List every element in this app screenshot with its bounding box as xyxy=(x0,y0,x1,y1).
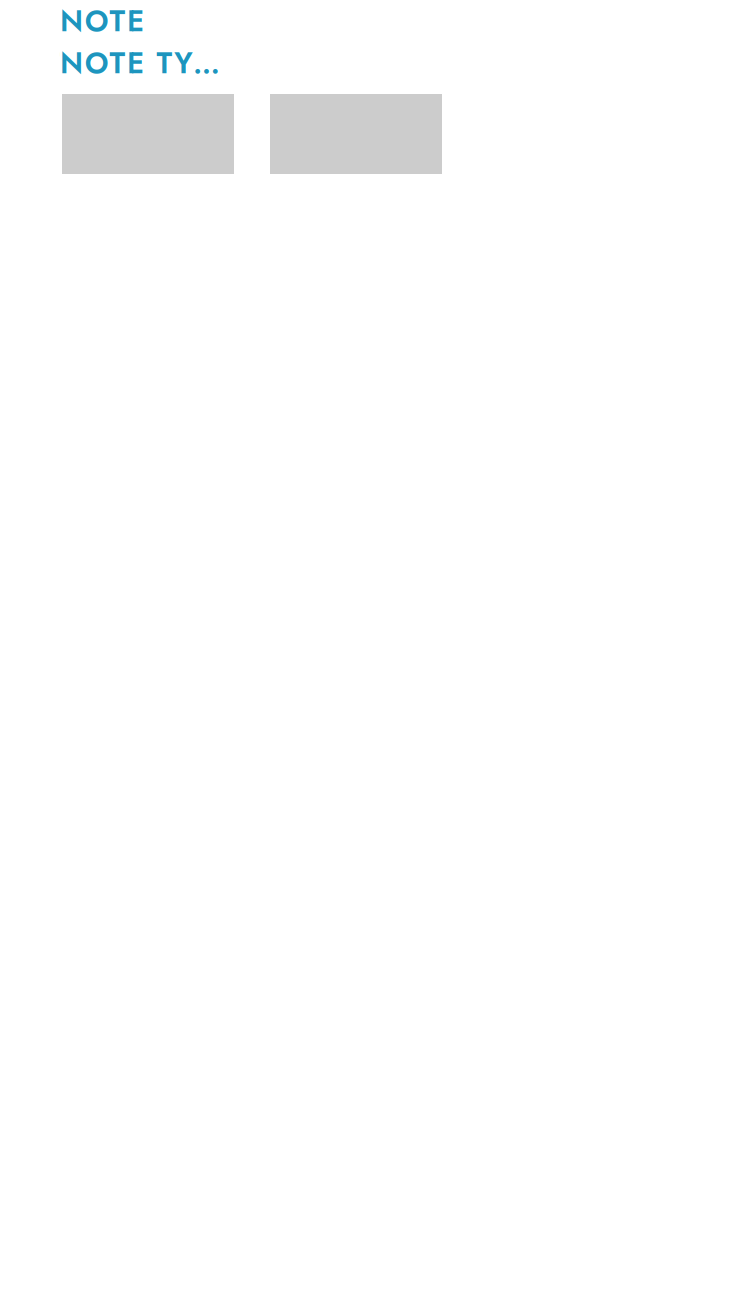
staticText: NOTE TYPE xyxy=(60,42,231,84)
staticText: NOTE TYPE xyxy=(60,0,231,42)
